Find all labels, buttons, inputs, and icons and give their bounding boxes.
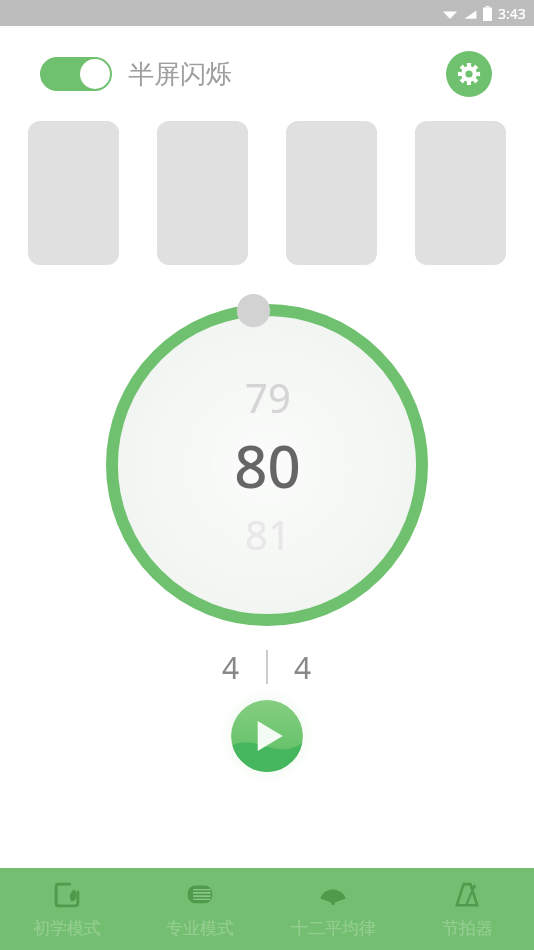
staticText: 79 [245, 370, 291, 424]
staticText: 专业模式 [166, 918, 234, 939]
staticText: 节拍器 [442, 918, 493, 939]
staticText: 4 [222, 647, 240, 688]
button[interactable]: 4 [196, 645, 266, 689]
staticText: 80 [234, 426, 301, 505]
staticText: 初学模式 [33, 918, 101, 939]
staticText: 81 [245, 507, 291, 561]
staticText: 3:43 [498, 4, 526, 23]
button[interactable]: Settings [446, 51, 492, 97]
button[interactable]: 节拍器 [400, 868, 534, 950]
button[interactable]: Tempo dial [97, 295, 437, 635]
staticText: 十二平均律 [291, 918, 376, 939]
button[interactable]: 4 [268, 645, 338, 689]
button[interactable]: 半屏闪烁 [40, 57, 232, 91]
button[interactable]: 专业模式 [133, 868, 266, 950]
button[interactable]: 初学模式 [0, 868, 133, 950]
button[interactable]: 十二平均律 [266, 868, 400, 950]
button[interactable]: Play [228, 697, 306, 775]
staticText: 半屏闪烁 [128, 58, 232, 91]
staticText: 4 [294, 647, 312, 688]
